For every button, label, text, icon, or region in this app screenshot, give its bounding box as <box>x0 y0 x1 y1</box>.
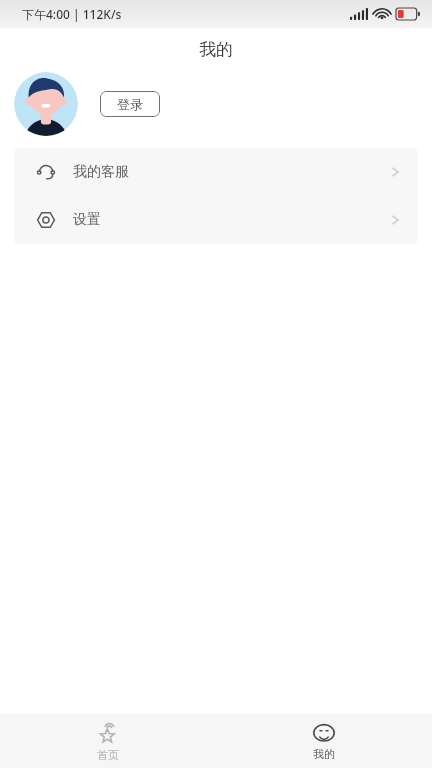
staticText: 设置 <box>73 211 101 229</box>
button[interactable]: 我的客服 <box>14 148 418 196</box>
button[interactable]: 首页 <box>0 714 216 768</box>
button[interactable]: 设置 <box>14 196 418 244</box>
button[interactable]: 登录 <box>100 91 160 117</box>
staticText: 首页 <box>97 748 119 762</box>
staticText: 我的 <box>313 747 335 761</box>
staticText: 下午4:00 | 112K/s <box>22 6 122 22</box>
staticText: 我的客服 <box>73 163 129 181</box>
button[interactable]: 我的 <box>216 714 432 768</box>
staticText: 登录 <box>117 96 143 112</box>
button[interactable]: Profile avatar <box>14 72 78 136</box>
staticText: 我的 <box>199 39 233 60</box>
